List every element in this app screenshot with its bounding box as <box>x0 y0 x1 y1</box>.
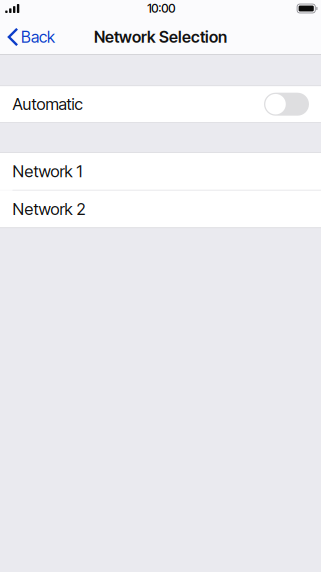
staticText: Network Selection <box>94 27 227 47</box>
staticText: Network 1 <box>12 162 82 181</box>
staticText: Back <box>21 27 55 47</box>
button[interactable]: Automatic network selection <box>264 93 309 116</box>
button[interactable]: Back <box>0 20 65 54</box>
staticText: 10:00 <box>147 1 175 16</box>
button[interactable]: Network 1 <box>0 153 321 190</box>
staticText: Network 2 <box>12 199 85 219</box>
button[interactable]: Network 2 <box>0 190 321 227</box>
staticText: Automatic <box>12 94 82 114</box>
